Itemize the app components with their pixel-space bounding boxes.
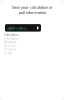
staticText: Records (4, 44, 15, 48)
staticText: Information (4, 37, 20, 40)
staticText: Save your calculation or pull informatio… (11, 4, 52, 15)
staticText: Calculation (4, 33, 19, 37)
staticText: Ready (4, 51, 12, 55)
staticText: Finished (4, 48, 16, 51)
staticText: Workspace (4, 40, 17, 44)
staticText: npm run calculate --save (7, 25, 29, 30)
